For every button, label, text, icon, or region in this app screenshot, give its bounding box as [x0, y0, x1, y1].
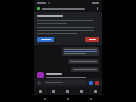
button[interactable]: [68, 59, 99, 64]
button[interactable]: Profile: [88, 87, 102, 95]
button[interactable]: Emoji: [89, 81, 93, 85]
button[interactable]: Record: [95, 81, 99, 85]
button[interactable]: [43, 80, 87, 85]
button[interactable]: [37, 37, 54, 42]
button[interactable]: More options: [34, 5, 102, 12]
button[interactable]: Add attachment: [37, 81, 41, 85]
button[interactable]: [71, 67, 99, 72]
button[interactable]: More options: [96, 7, 99, 10]
button[interactable]: Back: [34, 95, 56, 102]
button[interactable]: Search: [47, 87, 60, 95]
button[interactable]: [62, 47, 99, 56]
button[interactable]: [85, 37, 99, 42]
button[interactable]: Recents: [79, 95, 102, 102]
button[interactable]: Library: [60, 87, 74, 95]
button[interactable]: [34, 72, 102, 78]
button[interactable]: Home: [56, 95, 79, 102]
button[interactable]: Home: [34, 87, 47, 95]
button[interactable]: Messages: [74, 87, 88, 95]
